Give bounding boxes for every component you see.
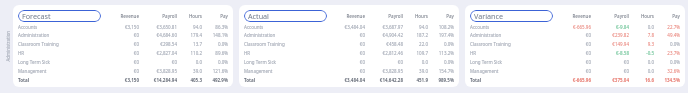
staticText: €0 — [397, 59, 403, 65]
staticText: HR — [244, 50, 251, 56]
staticText: 148.1% — [212, 32, 228, 38]
button[interactable]: Forecast — [13, 5, 233, 87]
button[interactable]: Accounts — [244, 23, 454, 31]
staticText: 492.9% — [212, 77, 228, 83]
staticText: Pay — [220, 13, 228, 19]
staticText: €149.94 — [612, 41, 629, 47]
staticText: Hours — [188, 13, 202, 19]
button[interactable]: Administration — [470, 31, 680, 39]
staticText: €3,484.04 — [344, 77, 365, 83]
staticText: HR — [470, 50, 477, 56]
staticText: 86.3% — [215, 24, 228, 30]
staticText: 16.6 — [645, 77, 654, 83]
staticText: Administration — [18, 32, 50, 38]
staticText: HR — [18, 50, 25, 56]
staticText: 405.3 — [190, 77, 202, 83]
staticText: €239.82 — [612, 32, 629, 38]
staticText: 989.5% — [438, 77, 454, 83]
staticText: 94.0 — [419, 24, 428, 30]
staticText: €-665.96 — [572, 77, 591, 83]
staticText: 9.3 — [647, 41, 654, 47]
button[interactable]: Accounts — [470, 23, 680, 31]
staticText: €3,828.95 — [156, 68, 177, 74]
staticText: €-9.84 — [616, 24, 629, 30]
staticText: €375.04 — [612, 77, 629, 83]
button[interactable]: Management — [244, 66, 454, 75]
staticText: Accounts — [244, 24, 264, 30]
button[interactable]: Actual — [244, 10, 327, 22]
staticText: Payroll — [388, 13, 403, 19]
staticText: Administration — [4, 30, 10, 61]
staticText: Long Term Sick — [470, 59, 502, 65]
button[interactable]: Classroom Training — [470, 39, 680, 48]
staticText: €0 — [133, 41, 139, 47]
button[interactable]: Variance — [465, 5, 685, 87]
staticText: 113.2% — [438, 50, 454, 56]
staticText: 0.0% — [669, 59, 680, 65]
staticText: €0 — [171, 59, 177, 65]
button[interactable]: Classroom Training — [244, 39, 454, 48]
staticText: 39.0 — [193, 68, 202, 74]
staticText: Actual — [248, 11, 269, 21]
button[interactable]: HR — [470, 48, 680, 57]
button[interactable]: Total — [18, 75, 228, 84]
staticText: Payroll — [614, 13, 629, 19]
staticText: 0.0 — [195, 59, 202, 65]
staticText: Hours — [414, 13, 428, 19]
staticText: 197.4% — [438, 32, 454, 38]
staticText: Classroom Training — [18, 41, 59, 47]
staticText: 89.6% — [215, 50, 228, 56]
staticText: 13.7 — [193, 41, 202, 47]
staticText: €458.48 — [386, 41, 403, 47]
staticText: €3,650.81 — [156, 24, 177, 30]
button[interactable]: HR — [18, 48, 228, 57]
button[interactable]: Management — [470, 66, 680, 75]
staticText: 154.7% — [438, 68, 454, 74]
button[interactable]: Total — [244, 75, 454, 84]
staticText: €2,827.04 — [156, 50, 177, 56]
staticText: Administration — [470, 32, 502, 38]
staticText: 0.0 — [647, 24, 654, 30]
staticText: €4,684.60 — [156, 32, 177, 38]
button[interactable]: Forecast — [18, 10, 101, 22]
staticText: 23.7% — [667, 50, 680, 56]
staticText: 39.0 — [419, 68, 428, 74]
staticText: €0 — [133, 68, 139, 74]
staticText: Forecast — [22, 11, 51, 21]
button[interactable]: Variance — [470, 10, 553, 22]
button[interactable]: Actual — [239, 5, 459, 87]
staticText: €0 — [359, 41, 365, 47]
staticText: 0.0% — [217, 59, 228, 65]
staticText: €0 — [359, 32, 365, 38]
staticText: 22.7% — [667, 24, 680, 30]
button[interactable]: Administration — [244, 31, 454, 39]
staticText: Variance — [474, 11, 504, 21]
button[interactable]: Long Term Sick — [244, 57, 454, 66]
staticText: 179.4 — [190, 32, 202, 38]
staticText: Revenue — [572, 13, 591, 19]
staticText: Management — [18, 68, 47, 74]
button[interactable]: HR — [244, 48, 454, 57]
staticText: €3,828.95 — [382, 68, 403, 74]
staticText: Management — [470, 68, 499, 74]
staticText: 7.8 — [647, 32, 654, 38]
staticText: €0 — [133, 50, 139, 56]
staticText: €3,150 — [124, 24, 139, 30]
button[interactable]: Accounts — [18, 23, 228, 31]
staticText: €0 — [133, 32, 139, 38]
staticText: €0 — [133, 59, 139, 65]
staticText: €-665.96 — [572, 24, 591, 30]
staticText: Total — [18, 77, 30, 83]
button[interactable]: Long Term Sick — [18, 57, 228, 66]
staticText: Accounts — [470, 24, 490, 30]
staticText: Total — [244, 77, 256, 83]
staticText: Pay — [672, 13, 680, 19]
staticText: 121.6% — [212, 68, 228, 74]
button[interactable]: Total — [470, 75, 680, 84]
staticText: 22.0 — [419, 41, 428, 47]
button[interactable]: Long Term Sick — [470, 57, 680, 66]
button[interactable]: Administration — [18, 31, 228, 39]
button[interactable]: Management — [18, 66, 228, 75]
button[interactable]: Classroom Training — [18, 39, 228, 48]
staticText: €0 — [585, 68, 591, 74]
